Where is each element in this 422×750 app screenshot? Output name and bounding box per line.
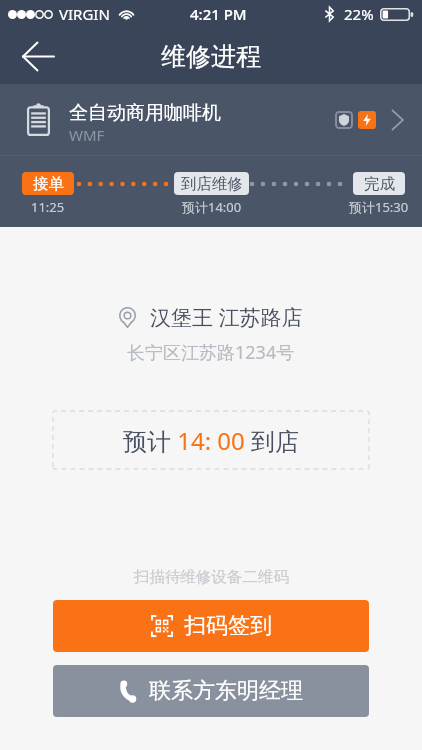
staticText: 维修进程 (161, 41, 261, 72)
staticText: VIRGIN (59, 4, 110, 24)
staticText: 接单 (33, 174, 64, 194)
button[interactable]: 到店维修 (174, 172, 249, 195)
staticText: 22% (344, 4, 374, 24)
staticText: 预计 14: 00 到店 (123, 424, 300, 457)
staticText: 完成 (364, 174, 395, 194)
staticText: 扫描待维修设备二维码 (134, 567, 289, 587)
staticText: 长宁区江苏路1234号 (127, 340, 295, 365)
button[interactable]: 接单 (22, 172, 74, 195)
staticText: 扫码签到 (184, 612, 272, 640)
button[interactable]: 完成 (353, 172, 405, 195)
staticText: 联系方东明经理 (149, 677, 303, 705)
staticText: WMF (69, 125, 105, 145)
staticText: 预计15:30 (349, 198, 409, 216)
staticText: 全自动商用咖啡机 (69, 101, 221, 125)
staticText: 预计14:00 (182, 198, 242, 216)
button[interactable]: 扫码签到 (53, 600, 369, 652)
button[interactable]: 联系方东明经理 (53, 665, 369, 717)
button[interactable]: 全自动商用咖啡机 (0, 84, 422, 155)
button[interactable]: Back (16, 34, 60, 78)
staticText: 到店维修 (181, 174, 243, 194)
staticText: 汉堡王 江苏路店 (150, 303, 303, 332)
staticText: 4:21 PM (190, 4, 247, 24)
staticText: 11:25 (31, 198, 65, 216)
